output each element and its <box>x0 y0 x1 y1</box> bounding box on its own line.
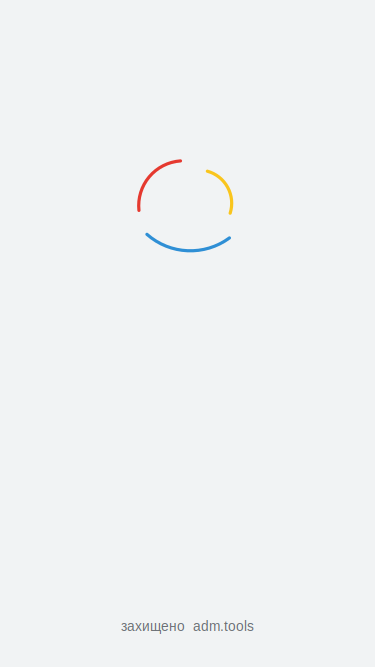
button[interactable]: захищено adm.tools <box>113 615 262 638</box>
staticText: захищено adm.tools <box>121 619 254 634</box>
